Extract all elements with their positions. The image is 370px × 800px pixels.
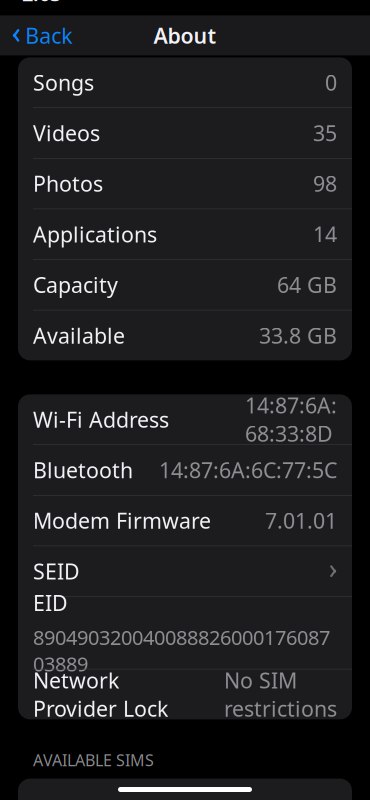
staticText: Applications bbox=[33, 220, 157, 248]
staticText: 64 GB bbox=[277, 271, 337, 299]
staticText: Capacity bbox=[33, 271, 118, 299]
staticText: Back bbox=[25, 21, 72, 49]
staticText: 7.01.01 bbox=[265, 506, 337, 535]
staticText: AVAILABLE SIMS bbox=[33, 749, 154, 771]
button[interactable]: Back bbox=[0, 13, 84, 57]
staticText: Wi-Fi Address bbox=[33, 405, 169, 433]
staticText: No SIM restrictions bbox=[224, 666, 337, 723]
staticText: Photos bbox=[33, 169, 103, 198]
staticText: 0 bbox=[325, 68, 337, 96]
staticText: 14 bbox=[313, 220, 337, 248]
staticText: SEID bbox=[33, 557, 80, 585]
button[interactable]: SEID bbox=[18, 546, 352, 596]
staticText: Bluetooth bbox=[33, 456, 133, 484]
staticText: 33.8 GB bbox=[259, 321, 337, 349]
staticText: 89049032004008882600017608703889 bbox=[33, 624, 330, 677]
staticText: 35 bbox=[313, 119, 337, 147]
staticText: Available bbox=[33, 321, 125, 349]
staticText: Network Provider Lock bbox=[33, 666, 168, 723]
staticText: 98 bbox=[313, 169, 337, 198]
staticText: 14:87:6A:68:33:8D bbox=[245, 391, 337, 448]
staticText: Modem Firmware bbox=[33, 506, 211, 535]
staticText: About bbox=[153, 21, 216, 49]
staticText: Videos bbox=[33, 119, 100, 147]
staticText: 2:03 bbox=[22, 0, 61, 7]
staticText: EID bbox=[33, 589, 68, 617]
staticText: Songs bbox=[33, 68, 94, 96]
staticText: 14:87:6A:6C:77:5C bbox=[159, 456, 337, 484]
